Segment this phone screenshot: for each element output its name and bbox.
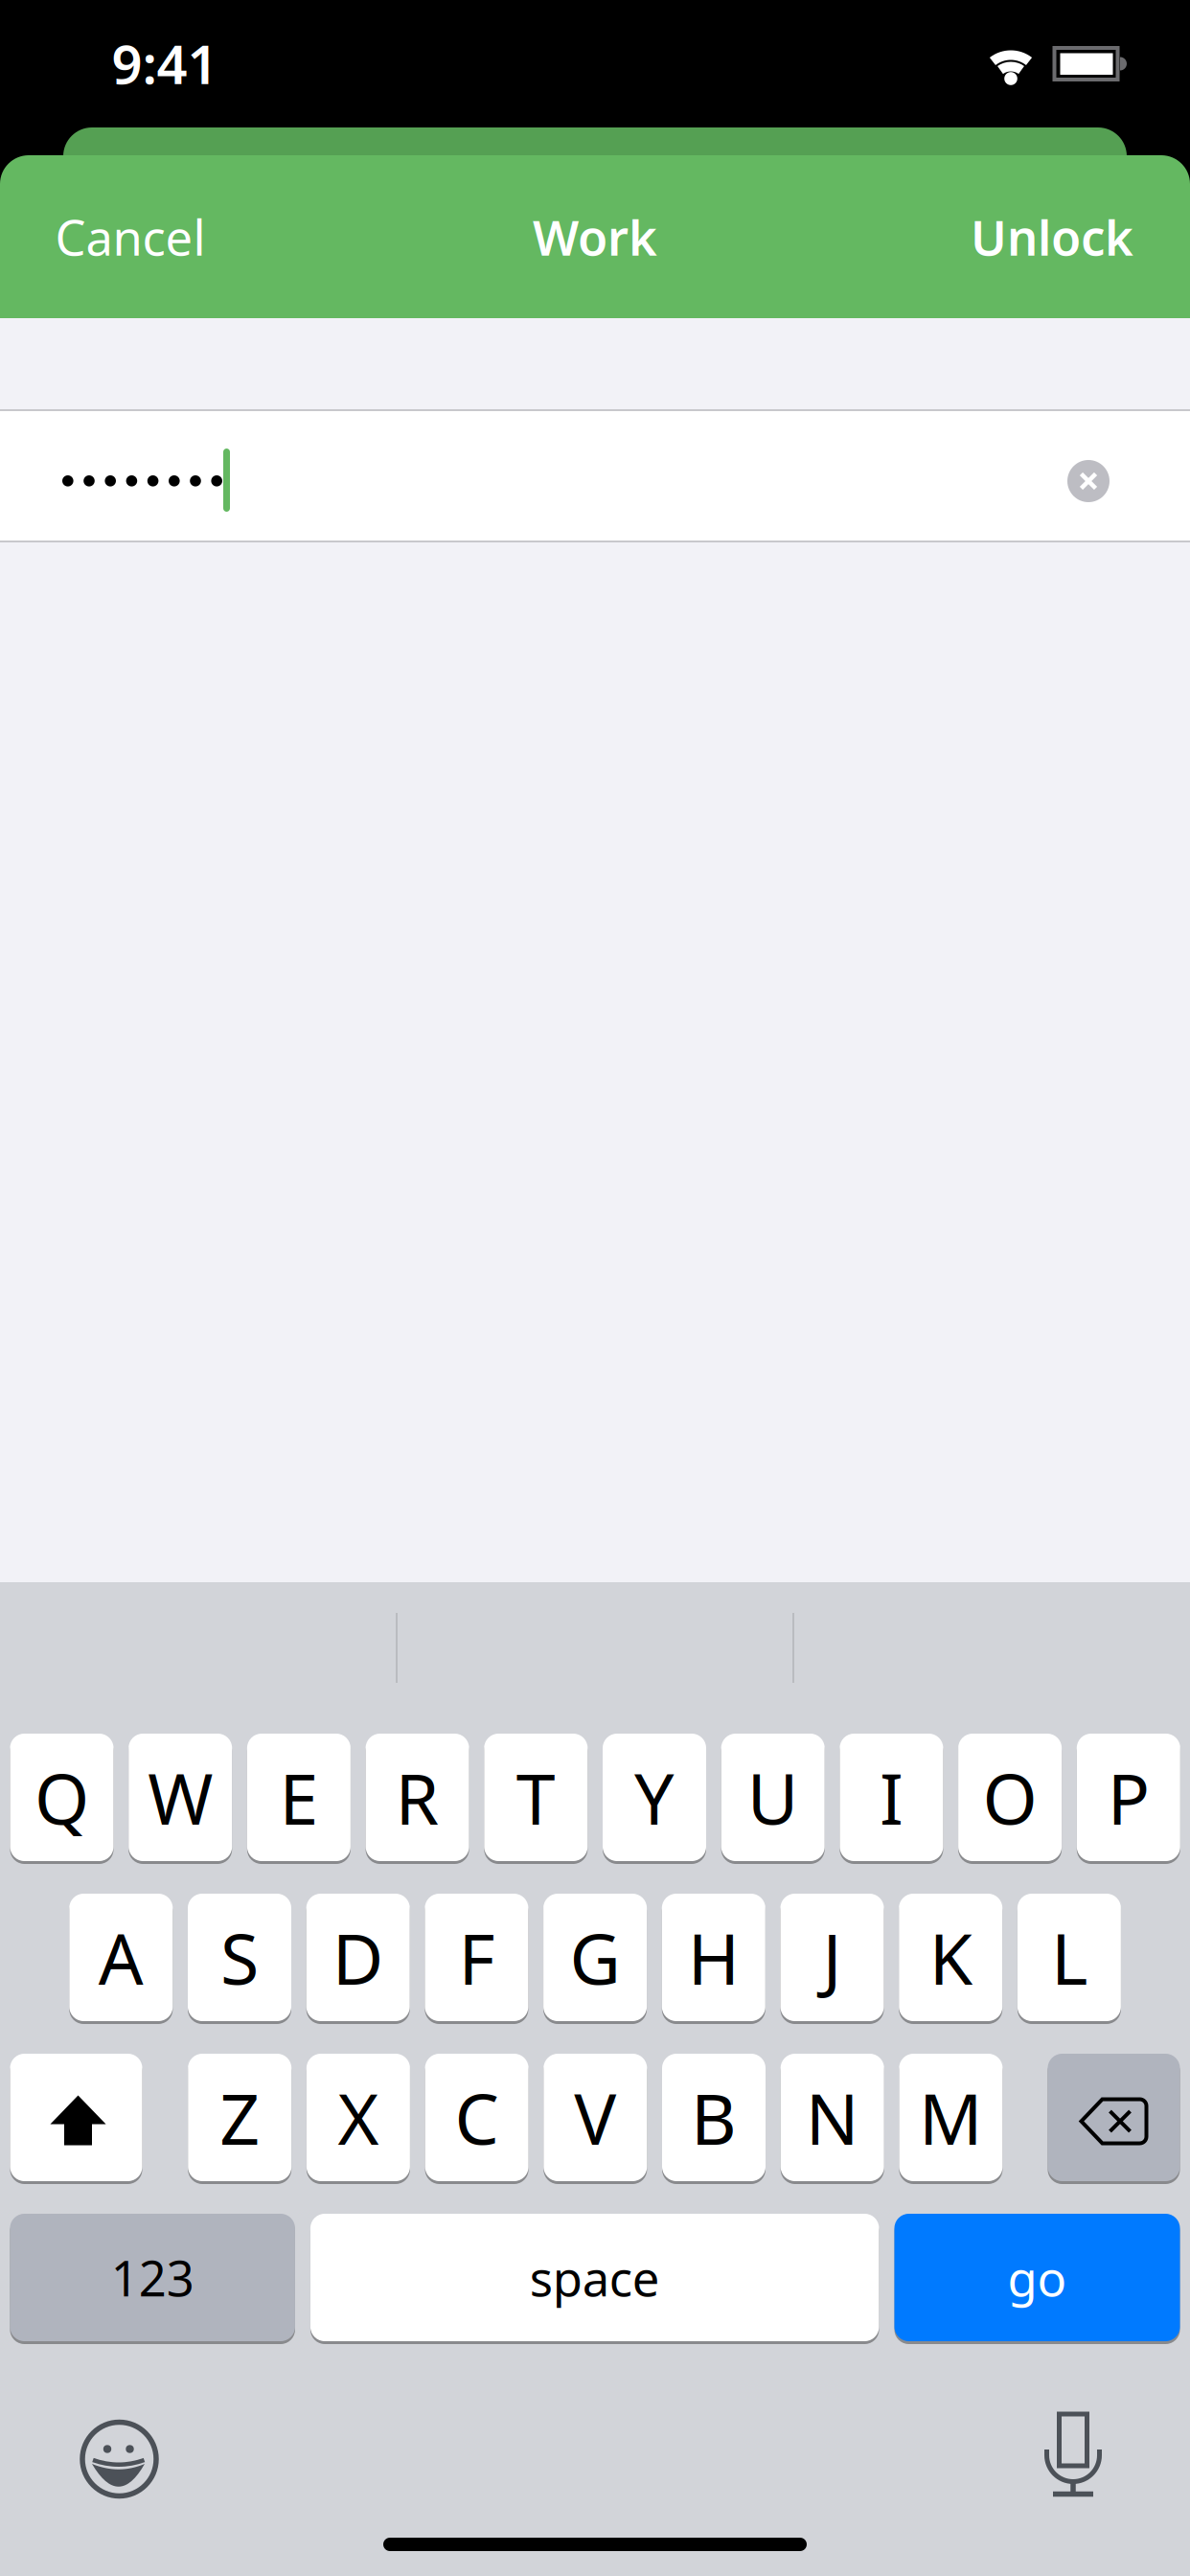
button[interactable]: 123 (10, 2214, 295, 2341)
staticText: 123 (111, 2245, 194, 2310)
staticText: E (279, 1751, 318, 1844)
button[interactable]: M (899, 2054, 1003, 2181)
button[interactable]: Unlock (971, 205, 1133, 269)
button[interactable]: Q (10, 1734, 114, 1861)
staticText: M (919, 2071, 983, 2164)
button[interactable]: L (1017, 1894, 1121, 2021)
button[interactable]: Emoji (80, 2419, 159, 2499)
button[interactable]: space (310, 2214, 879, 2341)
staticText: Cancel (55, 205, 206, 269)
staticText: X (338, 2071, 379, 2164)
button[interactable]: G (543, 1894, 647, 2021)
button[interactable]: R (366, 1734, 469, 1861)
staticText: Work (533, 205, 657, 269)
button[interactable]: E (247, 1734, 351, 1861)
button[interactable]: Cancel (55, 205, 206, 269)
staticText: Unlock (971, 205, 1133, 269)
staticText: J (823, 1911, 842, 2004)
staticText: space (530, 2245, 660, 2310)
button[interactable]: P (1077, 1734, 1180, 1861)
button[interactable]: B (662, 2054, 766, 2181)
button[interactable]: I (840, 1734, 943, 1861)
staticText: Y (634, 1751, 675, 1844)
staticText: U (747, 1751, 799, 1844)
staticText: O (983, 1751, 1037, 1844)
button[interactable]: W (129, 1734, 232, 1861)
button[interactable]: O (958, 1734, 1062, 1861)
button[interactable]: Shift (10, 2054, 142, 2181)
staticText: P (1107, 1751, 1150, 1844)
staticText: G (570, 1911, 620, 2004)
button[interactable]: A (69, 1894, 173, 2021)
staticText: W (148, 1751, 213, 1844)
staticText: 9:41 (112, 28, 218, 99)
staticText: N (806, 2071, 859, 2164)
button[interactable]: T (484, 1734, 588, 1861)
staticText: R (395, 1751, 439, 1844)
staticText: C (455, 2071, 499, 2164)
button[interactable]: Delete (1048, 2054, 1180, 2181)
button[interactable]: N (781, 2054, 884, 2181)
button[interactable]: X (307, 2054, 410, 2181)
staticText: I (879, 1751, 903, 1844)
button[interactable]: go (894, 2214, 1180, 2341)
button[interactable]: S (188, 1894, 291, 2021)
button[interactable]: D (306, 1894, 410, 2021)
staticText: Q (34, 1751, 89, 1844)
button[interactable]: J (780, 1894, 884, 2021)
staticText: go (1007, 2245, 1067, 2310)
staticText: B (691, 2071, 737, 2164)
staticText: H (688, 1911, 739, 2004)
button[interactable]: Clear text (1067, 460, 1110, 502)
staticText: D (332, 1911, 384, 2004)
button[interactable]: V (544, 2054, 647, 2181)
button[interactable]: K (899, 1894, 1002, 2021)
button[interactable]: C (425, 2054, 529, 2181)
button[interactable]: Password (0, 409, 1190, 542)
staticText: V (574, 2071, 616, 2164)
staticText: K (929, 1911, 972, 2004)
button[interactable]: H (662, 1894, 765, 2021)
staticText: Z (220, 2071, 260, 2164)
staticText: S (220, 1911, 259, 2004)
staticText: T (516, 1751, 556, 1844)
button[interactable]: Dictation (1045, 2413, 1101, 2497)
button[interactable]: Y (603, 1734, 706, 1861)
staticText: A (98, 1911, 144, 2004)
button[interactable]: U (721, 1734, 825, 1861)
button[interactable]: Z (188, 2054, 291, 2181)
staticText: L (1051, 1911, 1087, 2004)
staticText: F (458, 1911, 495, 2004)
button[interactable]: F (425, 1894, 528, 2021)
